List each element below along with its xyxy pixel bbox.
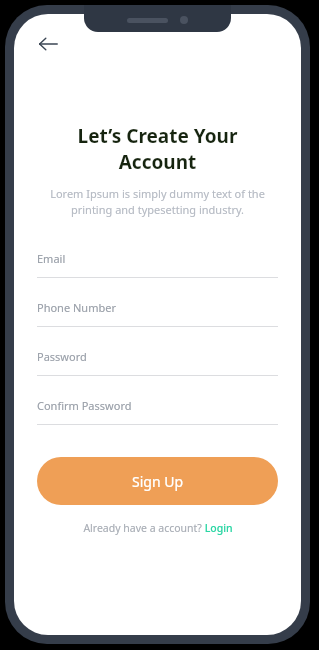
staticText: Password — [37, 349, 87, 364]
button[interactable]: Password — [37, 349, 278, 376]
staticText: Sign Up — [132, 472, 184, 491]
staticText: Let’s Create Your Account — [37, 123, 278, 175]
staticText: Lorem Ipsum is simply dummy text of the … — [37, 186, 278, 218]
staticText: Already have a account? Login — [83, 521, 233, 535]
staticText: Phone Number — [37, 300, 116, 315]
button[interactable]: Phone Number — [37, 300, 278, 327]
staticText: Confirm Password — [37, 398, 132, 413]
button[interactable]: Already have a account? Login — [37, 521, 278, 535]
button[interactable]: Email — [37, 251, 278, 278]
button[interactable]: Sign Up — [37, 457, 278, 505]
staticText: Email — [37, 251, 66, 266]
button[interactable]: Confirm Password — [37, 398, 278, 425]
button[interactable]: Back — [28, 24, 68, 64]
